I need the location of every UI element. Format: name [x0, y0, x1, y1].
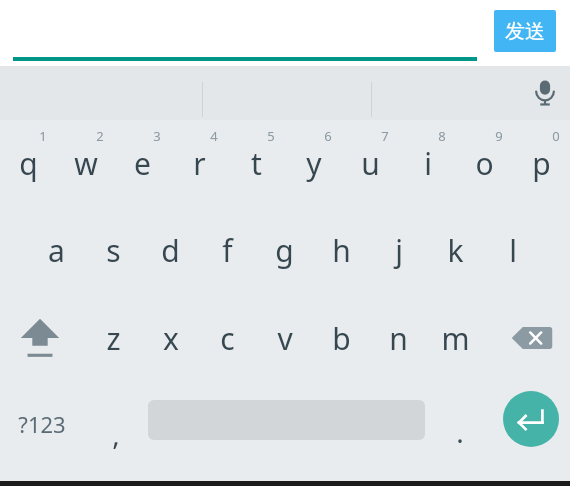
button[interactable]: c: [199, 294, 256, 382]
button[interactable]: m: [427, 294, 484, 382]
staticText: 9: [495, 127, 503, 145]
button[interactable]: 4: [171, 120, 228, 206]
button[interactable]: b: [313, 294, 370, 382]
staticText: x: [163, 318, 179, 359]
staticText: k: [447, 230, 464, 271]
button[interactable]: 2: [57, 120, 114, 206]
staticText: ?123: [18, 409, 66, 439]
staticText: z: [106, 318, 121, 359]
staticText: ,: [112, 415, 120, 453]
button[interactable]: x: [142, 294, 199, 382]
button[interactable]: a: [28, 206, 85, 294]
staticText: j: [395, 230, 403, 271]
button[interactable]: 3: [114, 120, 171, 206]
button[interactable]: 1: [0, 120, 57, 206]
staticText: 8: [438, 127, 446, 145]
button[interactable]: Voice input: [524, 73, 566, 115]
button[interactable]: s: [85, 206, 142, 294]
button[interactable]: 发送: [494, 10, 556, 52]
staticText: w: [74, 143, 98, 184]
staticText: f: [222, 230, 233, 271]
button[interactable]: g: [256, 206, 313, 294]
staticText: u: [361, 143, 380, 184]
button[interactable]: j: [370, 206, 427, 294]
staticText: v: [277, 318, 293, 359]
staticText: s: [106, 230, 121, 271]
staticText: .: [456, 413, 464, 451]
button[interactable]: ?123: [0, 382, 84, 466]
staticText: 发送: [505, 19, 545, 44]
staticText: 7: [381, 127, 389, 145]
button[interactable]: 8: [399, 120, 456, 206]
staticText: r: [193, 143, 206, 184]
button[interactable]: Enter: [503, 391, 559, 447]
button[interactable]: z: [85, 294, 142, 382]
staticText: t: [251, 143, 262, 184]
staticText: h: [332, 230, 351, 271]
button[interactable]: 0: [513, 120, 570, 206]
staticText: g: [275, 230, 294, 271]
staticText: 4: [210, 127, 218, 145]
staticText: 1: [39, 127, 47, 145]
button[interactable]: .: [434, 382, 486, 466]
staticText: q: [19, 143, 38, 184]
button[interactable]: 9: [456, 120, 513, 206]
staticText: p: [532, 143, 551, 184]
button[interactable]: k: [427, 206, 484, 294]
button[interactable]: v: [256, 294, 313, 382]
button[interactable]: n: [370, 294, 427, 382]
staticText: m: [441, 318, 470, 359]
staticText: c: [220, 318, 235, 359]
button[interactable]: 7: [342, 120, 399, 206]
staticText: e: [134, 143, 151, 184]
button[interactable]: d: [142, 206, 199, 294]
staticText: i: [424, 143, 432, 184]
button[interactable]: h: [313, 206, 370, 294]
button[interactable]: Backspace: [495, 294, 569, 382]
staticText: 6: [324, 127, 332, 145]
button[interactable]: 5: [228, 120, 285, 206]
staticText: y: [306, 143, 322, 184]
staticText: d: [161, 230, 180, 271]
staticText: 2: [96, 127, 104, 145]
staticText: l: [509, 230, 517, 271]
staticText: o: [475, 143, 494, 184]
staticText: 5: [267, 127, 275, 145]
button[interactable]: f: [199, 206, 256, 294]
staticText: b: [332, 318, 351, 359]
staticText: n: [389, 318, 408, 359]
button[interactable]: Shift: [2, 294, 78, 382]
staticText: 0: [552, 127, 560, 145]
staticText: 3: [153, 127, 161, 145]
button[interactable]: l: [484, 206, 541, 294]
button[interactable]: ,: [88, 382, 144, 466]
button[interactable]: 6: [285, 120, 342, 206]
staticText: a: [48, 230, 65, 271]
